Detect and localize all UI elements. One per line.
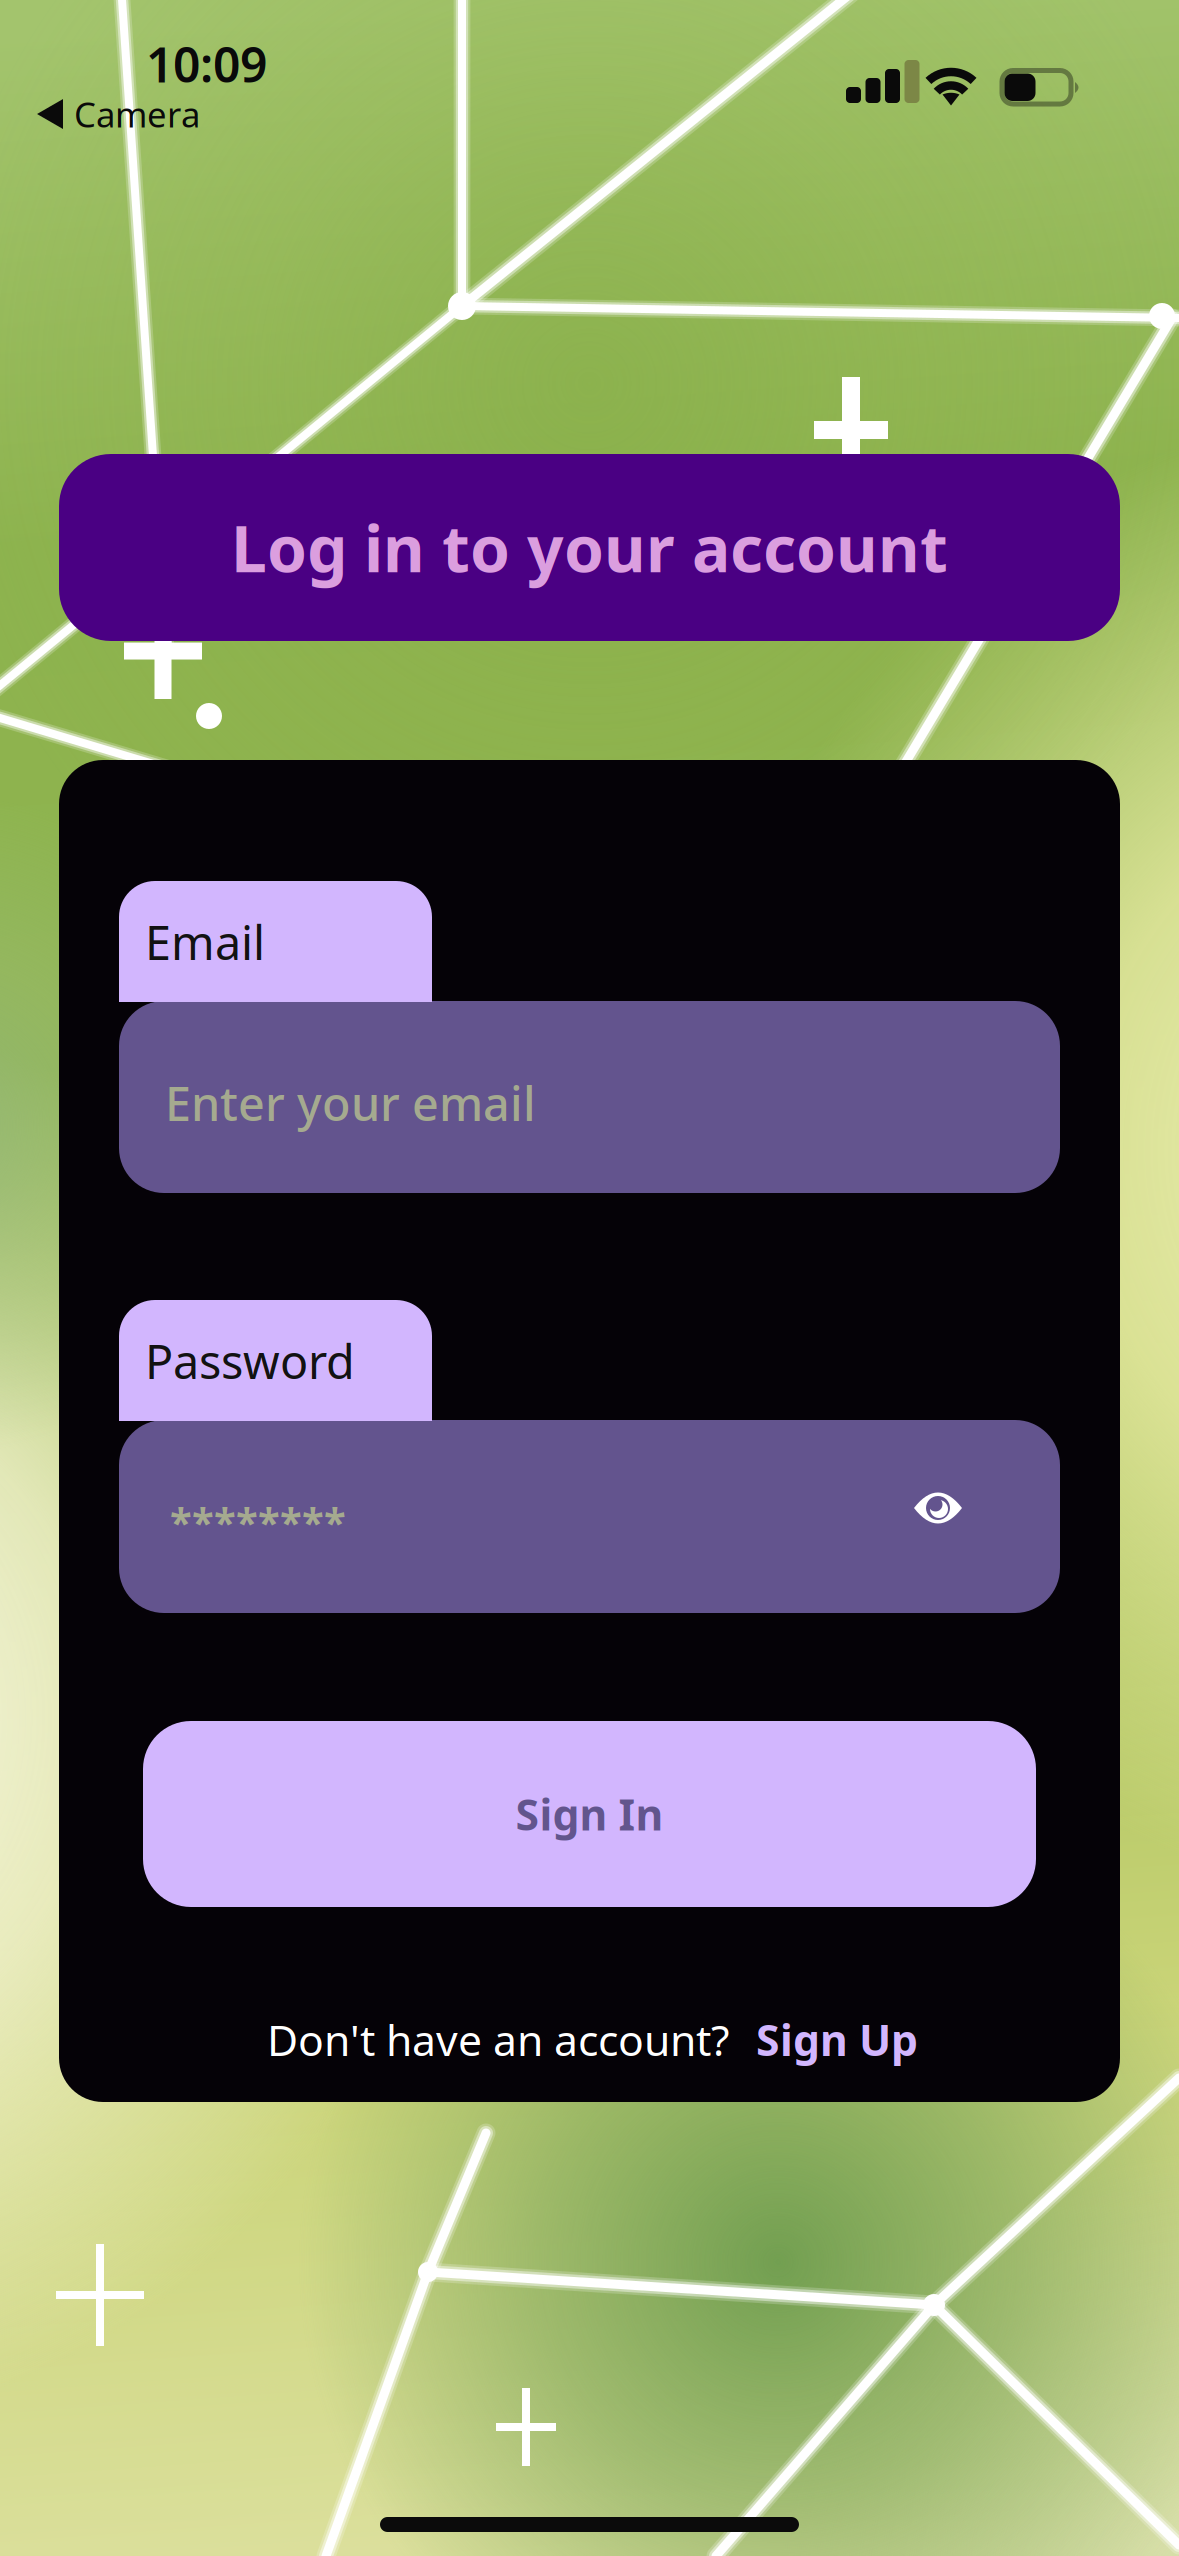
button[interactable]: Sign Up [756, 2011, 918, 2068]
staticText: Sign In [515, 1786, 663, 1842]
staticText: Log in to your account [231, 505, 948, 590]
staticText: Enter your email [165, 1072, 536, 1134]
button[interactable]: Camera [37, 91, 200, 137]
staticText: Email [145, 911, 265, 973]
staticText: Camera [74, 91, 200, 137]
staticText: 10:09 [146, 32, 267, 96]
staticText: Sign Up [756, 2011, 918, 2068]
button[interactable]: Log in to your account [59, 454, 1120, 641]
staticText: ******** [170, 1495, 346, 1548]
button[interactable]: Sign In [143, 1721, 1036, 1907]
staticText: Password [145, 1330, 355, 1392]
staticText: Don't have an account? [267, 2011, 730, 2068]
button[interactable]: Show password [910, 1485, 966, 1531]
